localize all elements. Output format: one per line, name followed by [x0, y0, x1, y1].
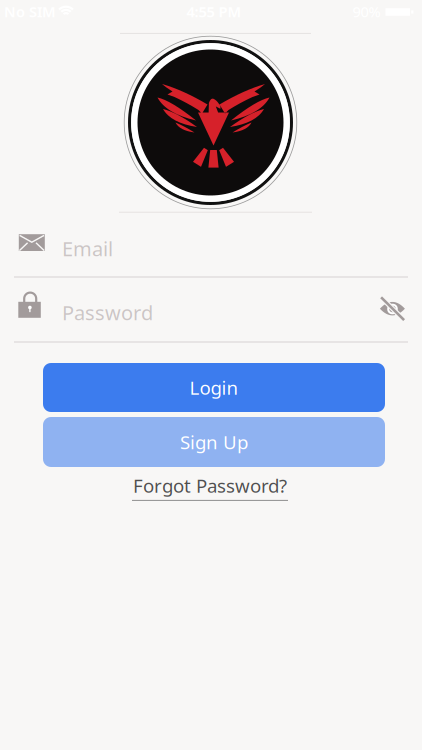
staticText: Password: [62, 299, 153, 326]
staticText: 4:55 PM: [186, 2, 241, 21]
button[interactable]: Show password: [378, 292, 407, 325]
button[interactable]: Login: [43, 363, 385, 412]
button[interactable]: Email: [14, 232, 408, 278]
button[interactable]: Password: [14, 290, 408, 343]
button[interactable]: Sign Up: [43, 417, 385, 467]
button[interactable]: Forgot Password?: [132, 473, 288, 501]
staticText: Sign Up: [180, 430, 248, 454]
staticText: Email: [62, 235, 113, 262]
staticText: Forgot Password?: [133, 473, 287, 498]
staticText: Login: [189, 375, 238, 400]
staticText: No SIM: [4, 2, 56, 21]
